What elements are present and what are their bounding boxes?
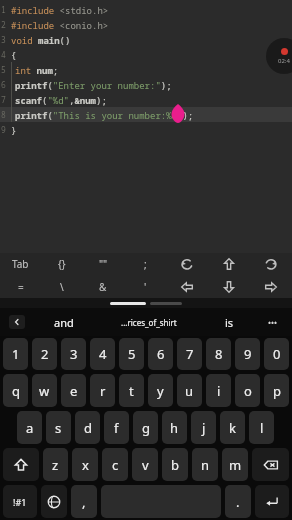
button[interactable]: t — [119, 374, 144, 407]
button[interactable]: {} — [41, 253, 82, 275]
button[interactable]: Redo — [250, 253, 292, 275]
button[interactable]: l — [249, 411, 274, 444]
staticText: int num; — [15, 64, 59, 76]
button[interactable]: m — [222, 448, 248, 481]
button[interactable]: 5 — [0, 62, 292, 77]
staticText: t — [129, 382, 134, 400]
staticText: k — [229, 419, 236, 437]
staticText: 2 — [1, 19, 6, 30]
button[interactable]: z — [43, 448, 68, 481]
button[interactable]: 8 — [206, 338, 231, 370]
button[interactable]: u — [177, 374, 202, 407]
button[interactable]: r — [90, 374, 115, 407]
staticText: !#1 — [13, 496, 27, 508]
button[interactable]: p — [264, 374, 289, 407]
button[interactable]: 1 — [3, 338, 28, 370]
button[interactable]: , — [71, 485, 97, 518]
staticText: f — [114, 419, 119, 437]
staticText: ••• — [268, 317, 278, 328]
button[interactable]: 4 — [90, 338, 115, 370]
button[interactable]: a — [17, 411, 42, 444]
button[interactable]: h — [162, 411, 187, 444]
button[interactable]: d — [75, 411, 100, 444]
button[interactable]: Back — [0, 308, 34, 336]
button[interactable]: v — [132, 448, 158, 481]
staticText: 4 — [99, 345, 107, 363]
button[interactable]: Move left — [166, 275, 208, 298]
staticText: 7 — [186, 345, 194, 363]
staticText: w — [39, 382, 50, 400]
button[interactable]: o — [235, 374, 260, 407]
button[interactable]: 7 — [0, 92, 292, 107]
button[interactable]: 2 — [32, 338, 57, 370]
button[interactable]: 7 — [177, 338, 202, 370]
button[interactable]: 3 — [61, 338, 86, 370]
button[interactable]: 0 — [264, 338, 289, 370]
staticText: Tab — [12, 257, 29, 271]
button[interactable]: Change keyboard — [41, 485, 67, 518]
button[interactable]: e — [61, 374, 86, 407]
button[interactable]: Move right — [250, 275, 292, 298]
button[interactable]: j — [191, 411, 216, 444]
button[interactable]: n — [192, 448, 218, 481]
staticText: 0 — [273, 345, 281, 363]
button[interactable]: b — [162, 448, 188, 481]
button[interactable]: 2 — [0, 17, 292, 32]
button[interactable]: c — [102, 448, 128, 481]
button[interactable]: 9 — [235, 338, 260, 370]
button[interactable]: Shift — [3, 448, 39, 481]
button[interactable]: 9 — [0, 122, 292, 137]
button[interactable]: "" — [82, 253, 124, 275]
staticText: o — [244, 382, 252, 400]
button[interactable]: = — [0, 275, 41, 298]
staticText: y — [157, 382, 164, 400]
button[interactable]: Tab — [0, 253, 41, 275]
button[interactable]: y — [148, 374, 173, 407]
button[interactable]: ...rices_of_shirt — [94, 308, 204, 336]
staticText: ' — [144, 280, 147, 294]
button[interactable]: i — [206, 374, 231, 407]
button[interactable]: g — [133, 411, 158, 444]
button[interactable]: Move down — [208, 275, 250, 298]
button[interactable]: 1 — [0, 2, 292, 17]
button[interactable]: s — [46, 411, 71, 444]
staticText: 7 — [1, 94, 6, 105]
button[interactable]: f — [104, 411, 129, 444]
button[interactable]: and — [34, 308, 94, 336]
staticText: 6 — [157, 345, 165, 363]
button[interactable]: is — [204, 308, 254, 336]
staticText: #include <conio.h> — [11, 19, 109, 31]
staticText: . — [236, 493, 240, 511]
button[interactable]: Undo — [166, 253, 208, 275]
button[interactable]: Move up — [208, 253, 250, 275]
staticText: ...rices_of_shirt — [121, 317, 177, 328]
button[interactable]: k — [220, 411, 245, 444]
button[interactable]: Backspace — [252, 448, 289, 481]
staticText: b — [171, 456, 179, 474]
button[interactable]: More suggestions — [254, 308, 292, 336]
staticText: 9 — [244, 345, 252, 363]
button[interactable]: & — [82, 275, 124, 298]
button[interactable]: ' — [124, 275, 166, 298]
button[interactable]: 3 — [0, 32, 292, 47]
button[interactable]: Screen recorder — [266, 38, 292, 74]
button[interactable]: ; — [124, 253, 166, 275]
button[interactable]: \ — [41, 275, 82, 298]
button[interactable]: q — [3, 374, 28, 407]
button[interactable]: 8 — [0, 107, 292, 122]
staticText: a — [26, 419, 34, 437]
button[interactable]: Enter — [255, 485, 289, 518]
button[interactable]: x — [72, 448, 98, 481]
staticText: = — [18, 280, 24, 294]
staticText: is — [225, 315, 234, 330]
button[interactable]: 6 — [148, 338, 173, 370]
button[interactable]: 5 — [119, 338, 144, 370]
button[interactable]: . — [225, 485, 251, 518]
button[interactable]: 6 — [0, 77, 292, 92]
button[interactable]: w — [32, 374, 57, 407]
button[interactable]: 4 — [0, 47, 292, 62]
staticText: j — [202, 419, 206, 437]
staticText: scanf("%d",&num); — [15, 94, 107, 106]
button[interactable]: !#1 — [3, 485, 37, 518]
